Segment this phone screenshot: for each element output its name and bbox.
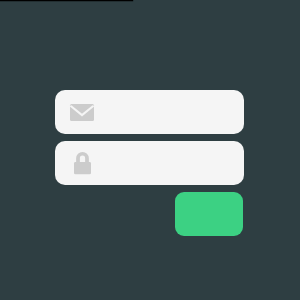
- button[interactable]: Email address field: [55, 90, 244, 134]
- button[interactable]: Sign in: [175, 192, 243, 236]
- button[interactable]: Password field: [55, 141, 244, 185]
